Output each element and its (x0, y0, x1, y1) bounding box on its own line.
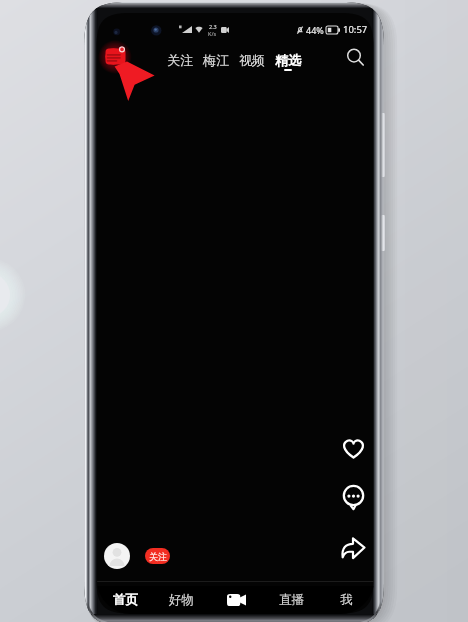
staticText: 梅江 (203, 52, 229, 68)
staticText: 10:57 (343, 23, 368, 36)
button[interactable]: 精选 (275, 52, 301, 71)
button[interactable]: 首页 (97, 586, 153, 614)
staticText: 2.3 (209, 23, 217, 30)
button[interactable]: Like (336, 431, 370, 465)
staticText: 关注 (167, 52, 193, 68)
button[interactable]: 梅江 (203, 52, 229, 68)
button[interactable]: 直播 (264, 586, 319, 614)
staticText: 视频 (239, 52, 265, 68)
staticText: 关注 (149, 551, 167, 562)
button[interactable]: Search (341, 43, 369, 71)
button[interactable]: 关注 (167, 52, 193, 68)
button[interactable]: Menu (103, 45, 129, 67)
staticText: K/s (208, 30, 217, 37)
staticText: 好物 (169, 592, 194, 608)
button[interactable]: 关注 (145, 548, 170, 564)
staticText: 精选 (275, 52, 301, 68)
staticText: 我 (340, 592, 353, 608)
button[interactable]: Share (336, 531, 370, 565)
button[interactable]: Record video (209, 586, 264, 614)
staticText: 首页 (113, 592, 138, 608)
button[interactable]: Comment (336, 480, 370, 514)
staticText: 44% (306, 24, 324, 36)
staticText: 直播 (279, 592, 304, 608)
button[interactable]: 我 (319, 586, 374, 614)
button[interactable]: 视频 (239, 52, 265, 68)
button[interactable]: Profile (104, 543, 130, 569)
button[interactable]: 好物 (153, 586, 209, 614)
